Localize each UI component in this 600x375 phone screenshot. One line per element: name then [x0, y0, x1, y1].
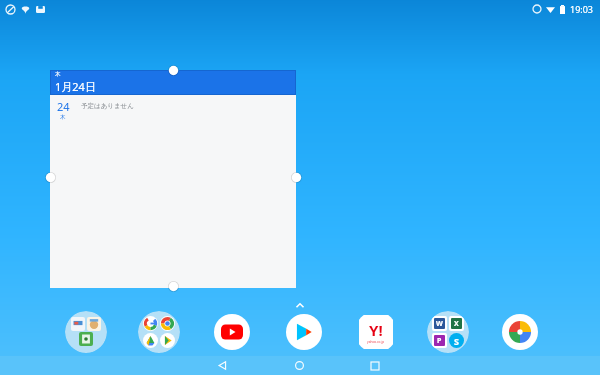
- button[interactable]: Resize widget: [168, 281, 179, 292]
- staticText: P: [437, 336, 442, 346]
- staticText: S: [454, 335, 459, 347]
- staticText: 24: [57, 99, 70, 114]
- button[interactable]: 木: [50, 70, 296, 288]
- button[interactable]: Resize widget: [291, 172, 302, 183]
- staticText: 1月24日: [55, 79, 96, 94]
- button[interactable]: Yahoo! JAPAN: [355, 311, 397, 353]
- button[interactable]: Open app drawer: [292, 298, 308, 314]
- button[interactable]: Play Store: [283, 311, 325, 353]
- button[interactable]: Recent apps: [363, 356, 387, 375]
- button[interactable]: Resize widget: [45, 172, 56, 183]
- button[interactable]: Office folder: [427, 311, 469, 353]
- staticText: 19:03: [570, 3, 594, 15]
- staticText: 木: [55, 71, 61, 78]
- staticText: 木: [60, 114, 66, 121]
- button[interactable]: Google Photos: [499, 311, 541, 353]
- button[interactable]: Shopping folder: [65, 311, 107, 353]
- staticText: yahoo.co.jp: [367, 340, 385, 344]
- button[interactable]: YouTube: [211, 311, 253, 353]
- button[interactable]: Google folder: [138, 311, 180, 353]
- staticText: 予定はありません: [81, 102, 134, 110]
- button[interactable]: Resize widget: [168, 65, 179, 76]
- button[interactable]: Home: [287, 356, 311, 375]
- staticText: Y!: [369, 320, 383, 340]
- button[interactable]: Back: [210, 356, 234, 375]
- staticText: X: [454, 319, 459, 329]
- staticText: W: [436, 319, 443, 329]
